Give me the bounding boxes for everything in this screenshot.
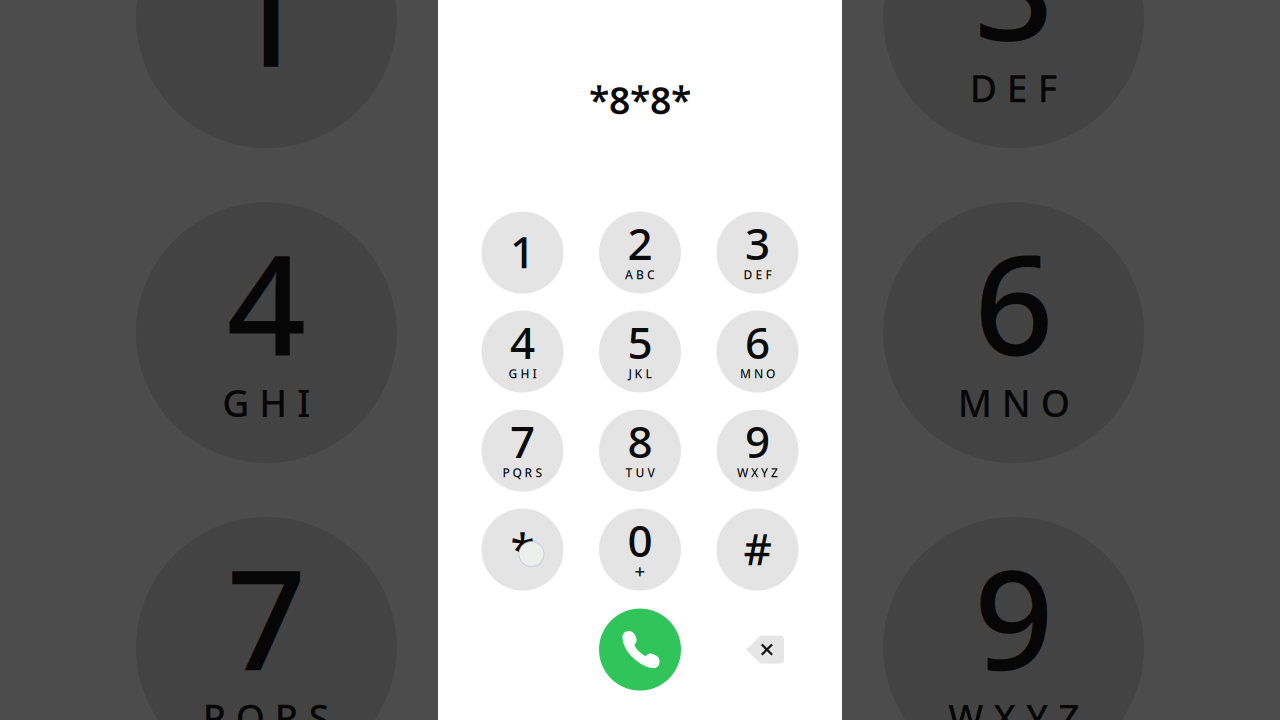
staticText: D E F [743,267,771,282]
staticText: 9 [974,524,1053,709]
staticText: *8*8* [589,75,691,125]
staticText: W X Y Z [948,693,1079,720]
staticText: 6 [974,210,1053,394]
staticText: G H I [508,366,536,381]
staticText: 4 [227,210,306,394]
staticText: D E F [970,63,1058,112]
staticText: 4 [510,313,535,371]
staticText: 8 [600,524,679,709]
staticText: 1 [227,0,306,105]
button[interactable]: 8 [599,410,681,492]
button[interactable]: # [716,509,798,591]
staticText: 5 [600,210,679,394]
button[interactable]: 1 [481,212,563,294]
staticText: A B C [594,63,686,112]
staticText: 9 [745,412,770,470]
staticText: 6 [745,313,770,371]
staticText: J K L [628,366,651,381]
staticText: 7 [227,524,306,709]
staticText: # [743,519,771,577]
staticText: 8 [627,412,652,470]
staticText: W X Y Z [737,465,778,480]
staticText: 7 [510,412,535,470]
button[interactable]: 4 [481,311,563,393]
button[interactable]: Call [599,609,681,691]
button[interactable]: 6 [716,311,798,393]
button[interactable]: 7 [481,410,563,492]
button[interactable]: 3 [716,212,798,294]
staticText: T U V [625,465,654,480]
button[interactable]: * [481,509,563,591]
staticText: M N O [958,378,1070,427]
staticText: J K L [602,378,677,427]
staticText: 5 [627,313,652,371]
button[interactable]: 0 [599,509,681,591]
staticText: 3 [974,0,1053,79]
staticText: P Q R S [203,693,330,720]
button[interactable]: 5 [599,311,681,393]
staticText: 2 [627,214,652,272]
staticText: M N O [740,366,775,381]
staticText: P Q R S [502,465,542,480]
staticText: 1 [510,222,535,280]
staticText: G H I [222,378,310,427]
staticText: A B C [625,267,655,282]
staticText: + [634,559,645,583]
staticText: 0 [627,511,652,569]
button[interactable]: 2 [599,212,681,294]
staticText: * [510,519,534,577]
button[interactable]: 9 [716,410,798,492]
button[interactable]: Delete [746,636,784,664]
staticText: 3 [745,214,770,272]
